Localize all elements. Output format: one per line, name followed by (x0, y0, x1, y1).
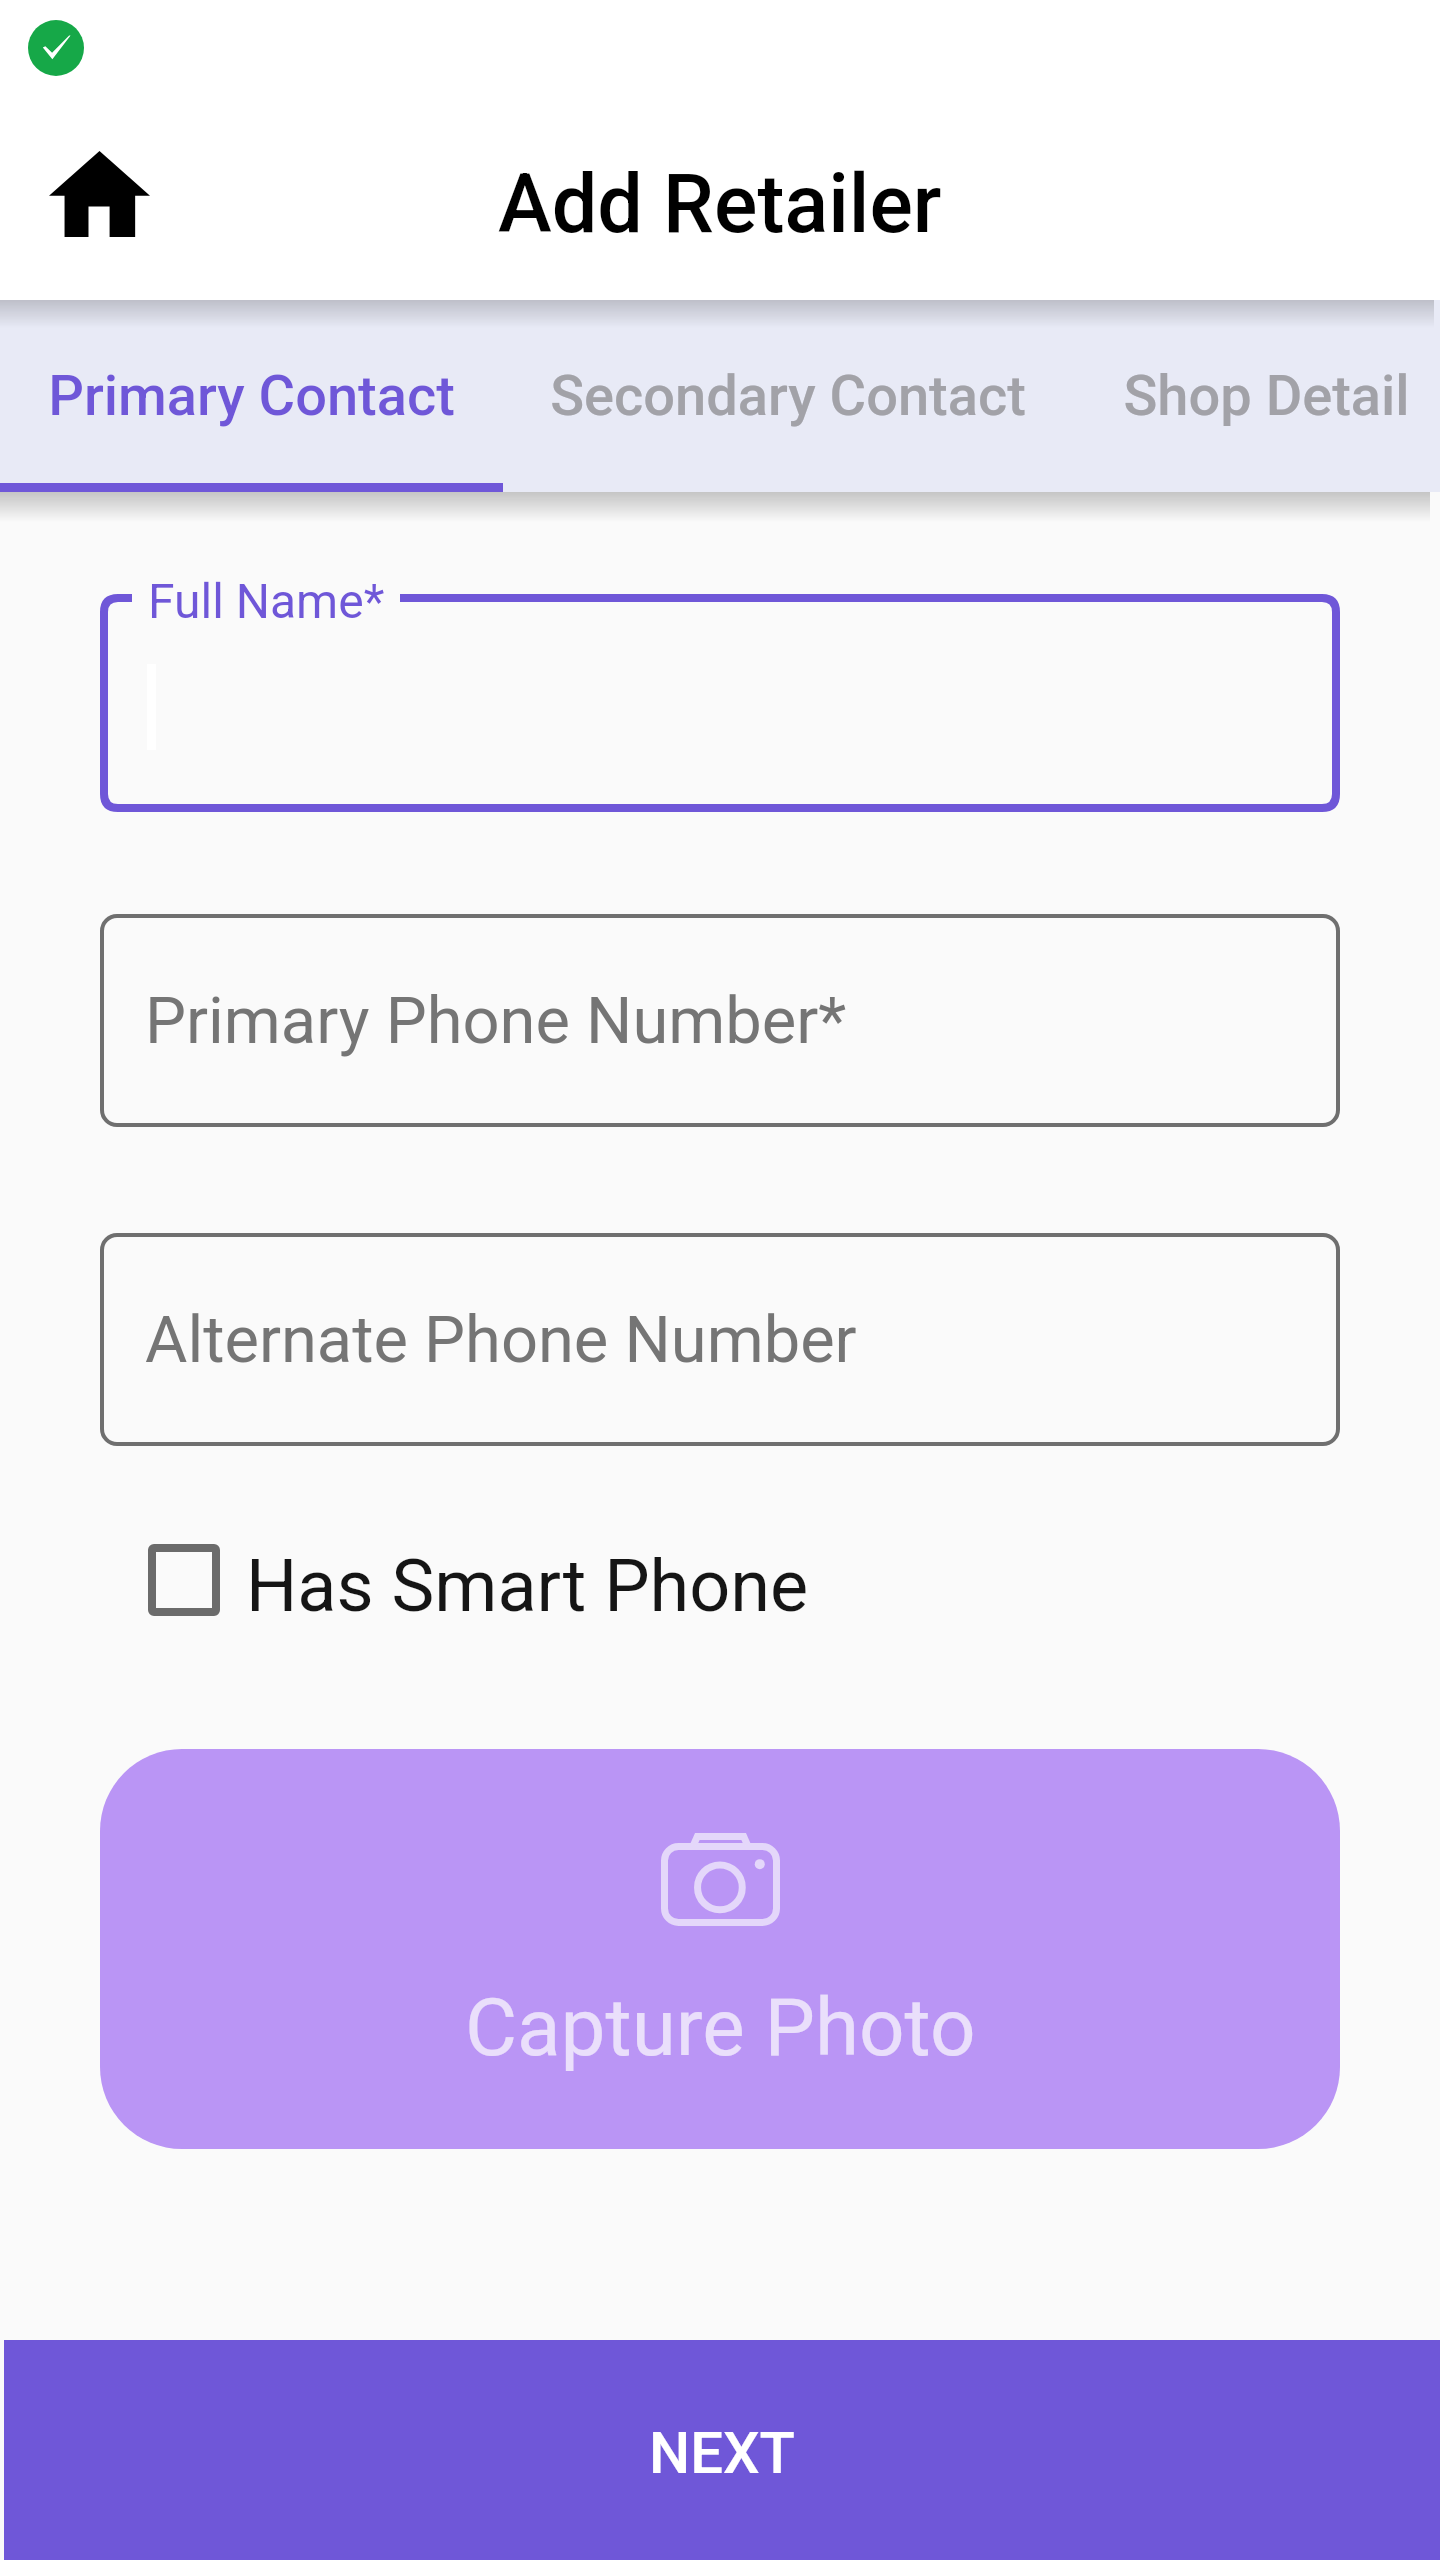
button[interactable]: Home (19, 124, 179, 264)
button[interactable]: NEXT (4, 2340, 1440, 2560)
staticText: Capture Photo (465, 1981, 976, 2075)
button[interactable]: Primary Phone Number* (100, 914, 1340, 1127)
staticText: NEXT (649, 2419, 795, 2487)
staticText: Has Smart Phone (246, 1544, 809, 1616)
button[interactable]: Shop Detail (1072, 300, 1440, 492)
button[interactable]: Has Smart Phone (148, 1544, 809, 1616)
button[interactable]: Primary Contact (0, 300, 503, 492)
staticText: Add Retailer (498, 157, 942, 252)
staticText: Full Name* (148, 573, 385, 629)
staticText: Alternate Phone Number (145, 1302, 857, 1378)
staticText: Primary Phone Number* (145, 983, 847, 1059)
button[interactable]: Full Name (100, 594, 1340, 812)
staticText: Secondary Contact (550, 363, 1026, 429)
staticText: Primary Contact (48, 363, 455, 429)
button[interactable]: Secondary Contact (503, 300, 1072, 492)
button[interactable]: Capture Photo (100, 1749, 1340, 2149)
staticText: Shop Detail (1123, 363, 1410, 429)
button[interactable]: Alternate Phone Number (100, 1233, 1340, 1446)
